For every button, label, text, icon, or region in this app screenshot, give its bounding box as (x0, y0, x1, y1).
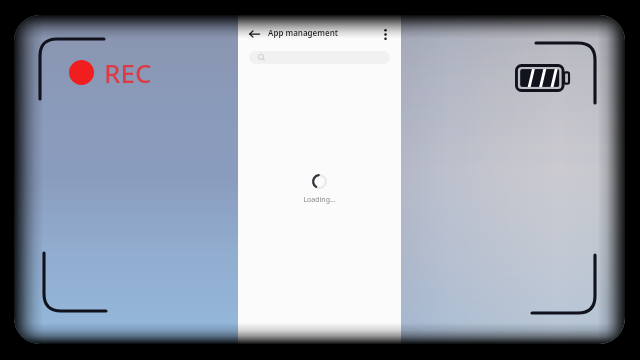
button[interactable]: Recording (69, 55, 152, 90)
button[interactable]: More options (379, 26, 392, 43)
button[interactable]: Battery level (515, 64, 570, 92)
staticText: App management (268, 27, 339, 38)
button[interactable] (249, 51, 390, 64)
button[interactable]: Back (249, 28, 260, 40)
staticText: REC (104, 55, 152, 90)
staticText: Loading... (303, 195, 336, 205)
